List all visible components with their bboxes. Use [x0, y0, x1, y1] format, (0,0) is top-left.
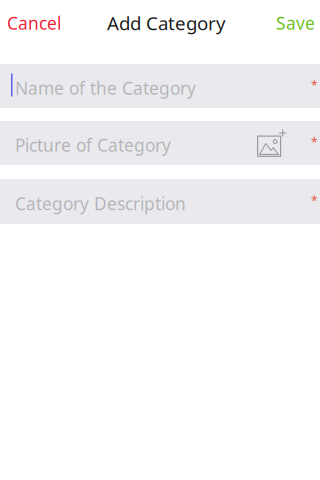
staticText: Cancel: [7, 11, 61, 34]
button[interactable]: Name of the Category: [0, 64, 320, 108]
staticText: Name of the Category: [15, 76, 196, 99]
staticText: Save: [276, 11, 315, 34]
button[interactable]: Cancel: [0, 8, 67, 38]
staticText: *: [311, 77, 318, 93]
staticText: Add Category: [107, 11, 226, 35]
staticText: Category Description: [15, 192, 186, 215]
staticText: *: [311, 192, 318, 208]
button[interactable]: Add Picture: [257, 129, 311, 156]
button[interactable]: Category Description: [0, 179, 320, 224]
staticText: *: [311, 134, 318, 150]
button[interactable]: Save: [270, 8, 320, 38]
staticText: Picture of Category: [15, 133, 171, 156]
button[interactable]: Picture of Category: [0, 121, 320, 165]
